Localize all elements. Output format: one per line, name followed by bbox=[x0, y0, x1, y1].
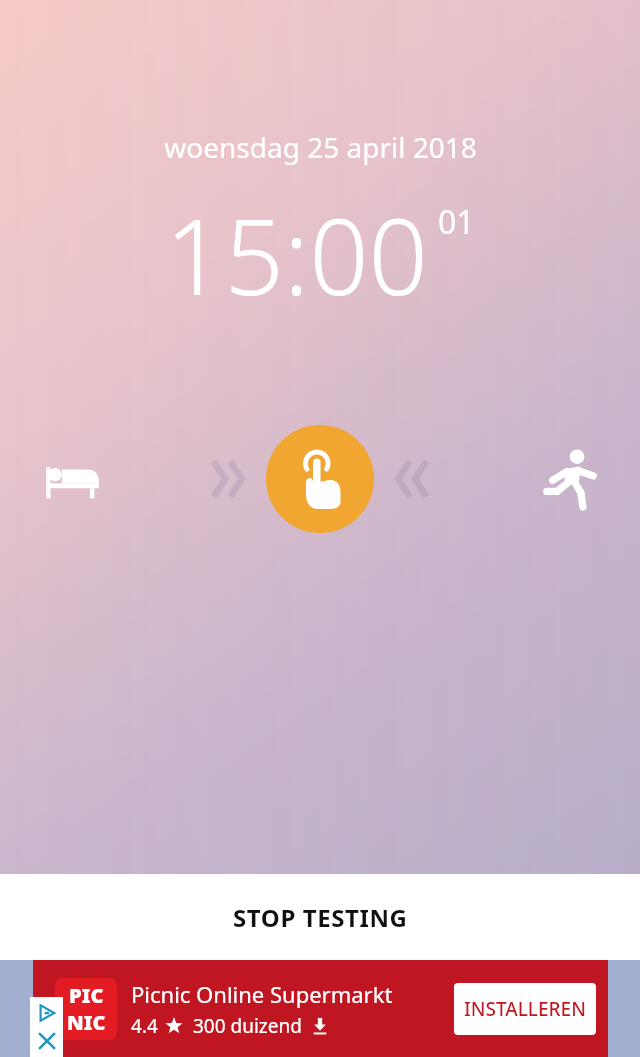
button[interactable]: Previous bbox=[196, 451, 258, 507]
button[interactable]: INSTALLEREN bbox=[454, 983, 596, 1035]
button[interactable]: Next bbox=[382, 451, 444, 507]
staticText: 15:00 bbox=[165, 184, 428, 326]
button[interactable]: PIC bbox=[33, 960, 608, 1057]
button[interactable]: Activity bbox=[534, 443, 606, 515]
staticText: Picnic Online Supermarkt bbox=[131, 979, 393, 1009]
button[interactable]: Ad choices bbox=[33, 999, 61, 1027]
staticText: INSTALLEREN bbox=[464, 996, 586, 1022]
staticText: 4.4 bbox=[131, 1013, 158, 1039]
button[interactable]: Tap bbox=[266, 425, 374, 533]
staticText: PIC bbox=[69, 982, 104, 1009]
staticText: 01 bbox=[438, 200, 475, 244]
staticText: STOP TESTING bbox=[233, 901, 408, 934]
button[interactable]: STOP TESTING bbox=[0, 874, 640, 960]
staticText: woensdag 25 april 2018 bbox=[164, 128, 477, 166]
staticText: 300 duizend bbox=[193, 1013, 302, 1039]
button[interactable]: Close ad bbox=[33, 1027, 61, 1055]
button[interactable]: Sleep bbox=[34, 443, 106, 515]
staticText: NIC bbox=[67, 1009, 106, 1036]
